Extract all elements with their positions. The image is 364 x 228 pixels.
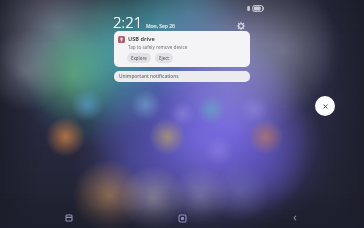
button[interactable]: Back (284, 208, 306, 228)
staticText: 2:21 (113, 12, 143, 32)
button[interactable]: Settings (234, 19, 248, 33)
staticText: Explore (131, 55, 147, 61)
button[interactable]: Unimportant notifications (114, 71, 250, 82)
button[interactable]: Close (315, 96, 335, 116)
button[interactable]: Recent apps (58, 208, 80, 228)
staticText: Unimportant notifications (119, 73, 179, 80)
staticText: Mon, Sep 26 (146, 23, 175, 30)
staticText: Eject (159, 55, 169, 61)
button[interactable]: Eject (155, 53, 173, 63)
staticText: USB drive (128, 35, 155, 43)
staticText: Tap to safely remove device (128, 44, 188, 50)
button[interactable]: Explore (127, 53, 151, 63)
button[interactable]: USB drive (114, 31, 250, 67)
button[interactable]: Home (171, 208, 193, 228)
